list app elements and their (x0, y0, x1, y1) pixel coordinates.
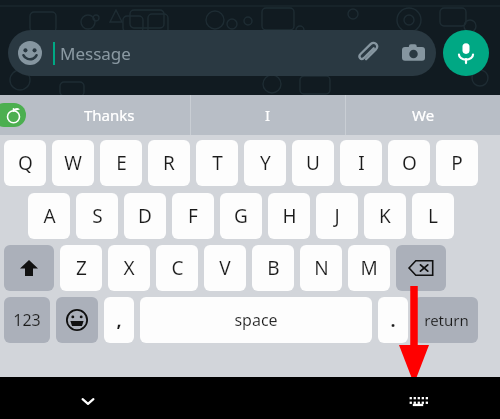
staticText: Q (18, 150, 33, 176)
staticText: B (267, 255, 280, 281)
button[interactable]: B (252, 245, 294, 291)
button[interactable]: S (76, 193, 118, 239)
staticText: X (123, 255, 135, 281)
button[interactable]: X (108, 245, 150, 291)
button[interactable]: Q (4, 140, 46, 186)
staticText: P (451, 150, 463, 176)
button[interactable]: return (414, 297, 478, 343)
button[interactable]: . (378, 297, 408, 343)
button[interactable]: I (191, 95, 345, 135)
staticText: E (116, 150, 127, 176)
staticText: D (138, 203, 152, 229)
button[interactable]: J (316, 193, 358, 239)
staticText: , (116, 308, 122, 333)
button[interactable]: space (140, 297, 372, 343)
button[interactable]: Hide keyboard (70, 383, 106, 419)
button[interactable]: Thanks (28, 95, 190, 135)
button[interactable]: P (436, 140, 478, 186)
staticText: Y (260, 150, 271, 176)
staticText: S (92, 203, 103, 229)
staticText: return (424, 310, 469, 330)
staticText: R (163, 150, 175, 176)
button[interactable]: C (156, 245, 198, 291)
button[interactable]: Emoji (8, 30, 436, 76)
button[interactable]: V (204, 245, 246, 291)
button[interactable]: I (340, 140, 382, 186)
button[interactable]: Attach (356, 41, 380, 65)
button[interactable]: , (104, 297, 134, 343)
staticText: G (234, 203, 248, 229)
staticText: O (402, 150, 417, 176)
staticText: I (265, 105, 271, 125)
staticText: Z (76, 255, 87, 281)
button[interactable]: Grammarly (0, 103, 26, 127)
button[interactable]: R (148, 140, 190, 186)
button[interactable]: K (364, 193, 406, 239)
staticText: A (43, 203, 56, 229)
button[interactable]: O (388, 140, 430, 186)
staticText: F (188, 203, 198, 229)
staticText: I (358, 150, 365, 176)
staticText: Thanks (84, 105, 135, 125)
staticText: 123 (13, 309, 41, 331)
staticText: W (64, 150, 82, 176)
button[interactable]: D (124, 193, 166, 239)
button[interactable]: M (348, 245, 390, 291)
button[interactable]: Voice message (443, 30, 489, 76)
button[interactable]: L (412, 193, 454, 239)
button[interactable]: Camera (402, 42, 425, 65)
staticText: V (219, 255, 231, 281)
button[interactable]: F (172, 193, 214, 239)
button[interactable]: Emoji keyboard (56, 297, 98, 343)
button[interactable]: Shift (4, 245, 54, 291)
staticText: N (314, 255, 329, 281)
button[interactable]: G (220, 193, 262, 239)
button[interactable]: Backspace (396, 245, 446, 291)
button[interactable]: W (52, 140, 94, 186)
staticText: space (234, 309, 278, 331)
staticText: J (334, 203, 340, 229)
button[interactable]: H (268, 193, 310, 239)
staticText: T (212, 150, 223, 176)
button[interactable]: Y (244, 140, 286, 186)
staticText: H (282, 203, 297, 229)
button[interactable]: U (292, 140, 334, 186)
button[interactable]: E (100, 140, 142, 186)
staticText: U (306, 150, 320, 176)
button[interactable]: Switch keyboard (400, 383, 436, 419)
button[interactable]: A (28, 193, 70, 239)
staticText: . (390, 308, 396, 333)
staticText: Message (60, 42, 131, 65)
staticText: C (171, 255, 184, 281)
staticText: L (428, 203, 438, 229)
button[interactable]: N (300, 245, 342, 291)
button[interactable]: T (196, 140, 238, 186)
staticText: M (360, 255, 378, 281)
button[interactable]: Z (60, 245, 102, 291)
button[interactable]: We (346, 95, 500, 135)
staticText: We (412, 105, 435, 125)
staticText: K (379, 203, 391, 229)
button[interactable]: 123 (4, 297, 50, 343)
button[interactable]: Emoji (18, 41, 42, 65)
